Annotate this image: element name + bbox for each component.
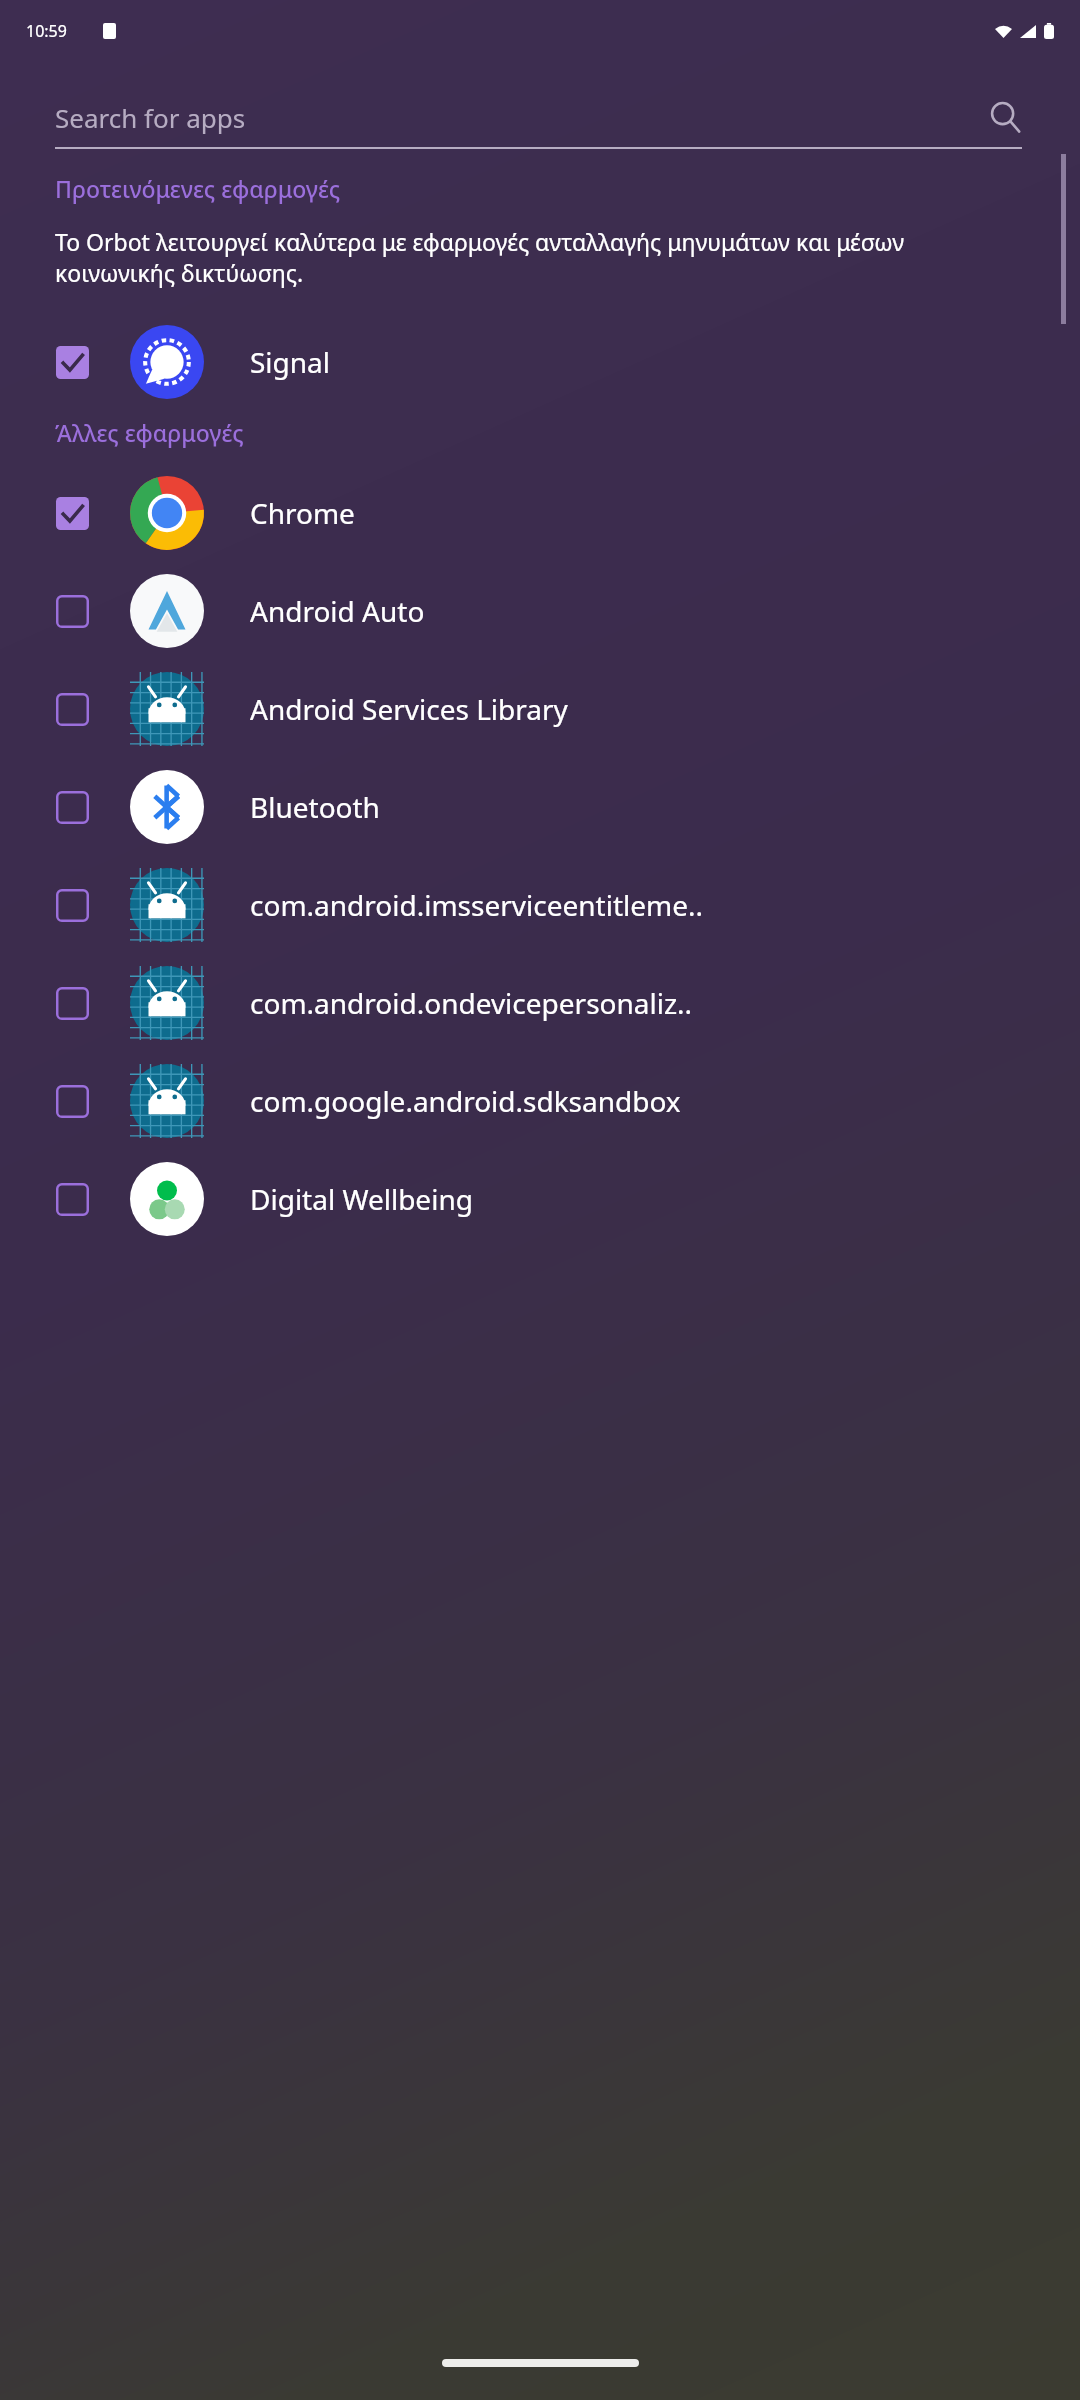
- button[interactable]: Android Services Library: [0, 660, 1080, 758]
- staticText: Chrome: [250, 494, 355, 532]
- button[interactable]: Signal: [0, 313, 1080, 411]
- staticText: Bluetooth: [250, 788, 380, 826]
- button[interactable]: Digital Wellbeing: [0, 1150, 1080, 1248]
- staticText: com.android.imsserviceentitleme..: [250, 886, 703, 924]
- staticText: Search for apps: [55, 100, 988, 135]
- other: Search: [988, 100, 1022, 134]
- staticText: Άλλες εφαρμογές: [55, 417, 244, 448]
- staticText: Android Services Library: [250, 690, 568, 728]
- button[interactable]: Search for apps: [55, 90, 1022, 144]
- staticText: Το Orbot λειτουργεί καλύτερα με εφαρμογέ…: [55, 226, 985, 289]
- staticText: Προτεινόμενες εφαρμογές: [55, 173, 341, 204]
- button[interactable]: Chrome: [0, 464, 1080, 562]
- staticText: com.google.android.sdksandbox: [250, 1082, 681, 1120]
- button[interactable]: com.google.android.sdksandbox: [0, 1052, 1080, 1150]
- button[interactable]: com.android.imsserviceentitleme..: [0, 856, 1080, 954]
- button[interactable]: Android Auto: [0, 562, 1080, 660]
- staticText: Android Auto: [250, 592, 425, 630]
- button[interactable]: com.android.ondevicepersonaliz..: [0, 954, 1080, 1052]
- staticText: 10:59: [26, 20, 67, 42]
- button[interactable]: Bluetooth: [0, 758, 1080, 856]
- staticText: Digital Wellbeing: [250, 1180, 473, 1218]
- staticText: com.android.ondevicepersonaliz..: [250, 984, 693, 1022]
- staticText: Signal: [250, 343, 331, 381]
